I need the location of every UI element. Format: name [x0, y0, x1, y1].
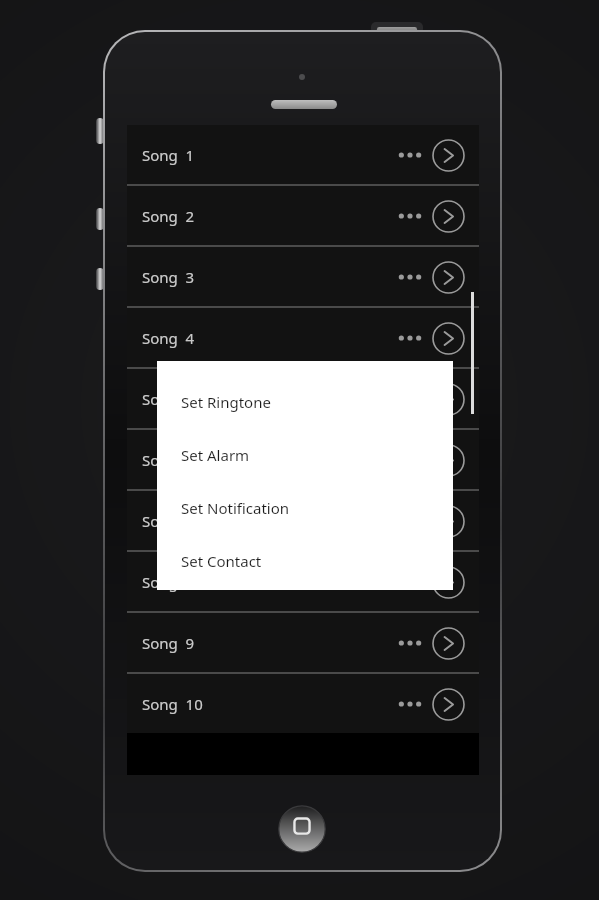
button[interactable]: Song 10	[127, 674, 479, 733]
button[interactable]: Open song 9	[427, 622, 469, 664]
button[interactable]: Song 8	[127, 552, 479, 611]
staticText: Song 10	[142, 694, 203, 714]
button[interactable]: Set Alarm	[157, 428, 453, 481]
button[interactable]: Song 3	[127, 247, 479, 306]
staticText: Song 1	[142, 145, 195, 165]
button[interactable]: Open song 10	[427, 683, 469, 725]
button[interactable]: Open song 7	[427, 500, 469, 542]
button[interactable]: Home	[273, 800, 331, 858]
button[interactable]: Song 2	[127, 186, 479, 245]
button[interactable]: Open song 4	[427, 317, 469, 359]
button[interactable]: Song 1	[127, 125, 479, 184]
button[interactable]: More options	[393, 257, 427, 297]
staticText: Set Contact	[181, 551, 262, 571]
button[interactable]: Set Ringtone	[157, 375, 453, 428]
button[interactable]: Set Notification	[157, 481, 453, 534]
button[interactable]: Open song 3	[427, 256, 469, 298]
staticText: Song 9	[142, 633, 195, 653]
staticText: Set Alarm	[181, 445, 250, 465]
button[interactable]: Song 4	[127, 308, 479, 367]
button[interactable]: More options	[393, 318, 427, 358]
staticText: Song 3	[142, 267, 195, 287]
staticText: Set Notification	[181, 498, 290, 518]
button[interactable]: More options	[393, 562, 427, 602]
button[interactable]: More options	[393, 684, 427, 724]
button[interactable]: Song 5	[127, 369, 479, 428]
staticText: Song 4	[142, 328, 195, 348]
button[interactable]: Song 6	[127, 430, 479, 489]
button[interactable]: More options	[393, 135, 427, 175]
button[interactable]: Set Contact	[157, 534, 453, 587]
button[interactable]: Open song 8	[427, 561, 469, 603]
button[interactable]: Song 9	[127, 613, 479, 672]
staticText: Song 7	[142, 511, 195, 531]
button[interactable]: Open song 5	[427, 378, 469, 420]
button[interactable]: Open song 1	[427, 134, 469, 176]
staticText: Song 8	[142, 572, 195, 592]
button[interactable]: Song 7	[127, 491, 479, 550]
button[interactable]: More options	[393, 196, 427, 236]
staticText: Set Ringtone	[181, 392, 271, 412]
button[interactable]: More options	[393, 623, 427, 663]
button[interactable]: Open song 2	[427, 195, 469, 237]
button[interactable]: Open song 6	[427, 439, 469, 481]
staticText: Song 2	[142, 206, 195, 226]
staticText: Song 6	[142, 450, 195, 470]
staticText: Song 5	[142, 389, 195, 409]
